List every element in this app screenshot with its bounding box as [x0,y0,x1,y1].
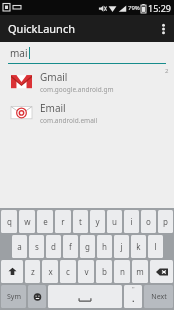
staticText: y [95,216,100,227]
staticText: 15:29 [148,2,172,14]
button[interactable]: h [97,235,112,258]
button[interactable]: Shift [1,260,23,283]
button[interactable]: z [25,260,40,283]
staticText: r [61,216,65,227]
button[interactable]: e [37,210,53,233]
staticText: u [112,216,117,227]
staticText: 79% [128,4,140,12]
staticText: Email [40,101,66,115]
staticText: k [136,241,141,252]
staticText: Gmail [40,70,68,84]
staticText: mai [10,46,28,60]
staticText: g [85,241,90,252]
button[interactable]: More options [152,15,174,42]
button[interactable]: r [55,210,71,233]
button[interactable]: Space [48,285,122,308]
button[interactable]: y [90,210,105,233]
staticText: com.android.email [40,116,98,125]
button[interactable]: Period [124,285,142,308]
button[interactable]: v [78,260,94,283]
button[interactable]: x [42,260,58,283]
staticText: i [130,216,133,227]
button[interactable]: Email [0,97,174,128]
button[interactable]: Sym [1,285,26,308]
staticText: w [24,216,31,227]
staticText: v [84,266,89,277]
staticText: Sym [7,292,21,302]
staticText: s [35,241,39,252]
staticText: j [120,241,123,252]
button[interactable]: s [29,235,44,258]
staticText: t [79,216,82,227]
staticText: QuickLaunch [8,21,75,36]
staticText: 2 [165,67,169,75]
staticText: q [7,216,12,227]
button[interactable]: Next [144,285,173,308]
staticText: n [120,266,125,277]
button[interactable]: l [148,235,163,258]
button[interactable]: t [73,210,88,233]
staticText: x [48,266,53,277]
button[interactable]: p [158,210,173,233]
staticText: a [17,241,22,252]
button[interactable]: Backspace [150,260,173,283]
staticText: z [31,266,35,277]
staticText: '' [132,285,135,293]
staticText: Next [151,292,167,302]
staticText: h [102,241,107,252]
button[interactable]: j [114,235,129,258]
button[interactable]: i [124,210,139,233]
button[interactable]: g [80,235,95,258]
staticText: f [69,241,72,252]
staticText: c [66,266,70,277]
button[interactable]: o [141,210,156,233]
button[interactable]: c [60,260,76,283]
staticText: d [51,241,56,252]
button[interactable]: f [63,235,78,258]
staticText: m [136,266,144,277]
staticText: com.google.android.gm [40,85,114,94]
staticText: p [163,216,168,227]
button[interactable]: Emoji [28,285,46,308]
button[interactable]: u [107,210,122,233]
staticText: . [132,292,135,304]
button[interactable]: n [114,260,130,283]
button[interactable]: k [131,235,146,258]
button[interactable]: m [132,260,148,283]
button[interactable]: Gmail [0,66,174,97]
staticText: o [146,216,151,227]
button[interactable]: q [1,210,17,233]
button[interactable]: d [46,235,61,258]
staticText: e [43,216,48,227]
button[interactable]: a [12,235,27,258]
button[interactable]: mai [0,42,174,64]
staticText: b [102,266,107,277]
staticText: l [154,241,157,252]
button[interactable]: w [19,210,35,233]
button[interactable]: b [96,260,112,283]
